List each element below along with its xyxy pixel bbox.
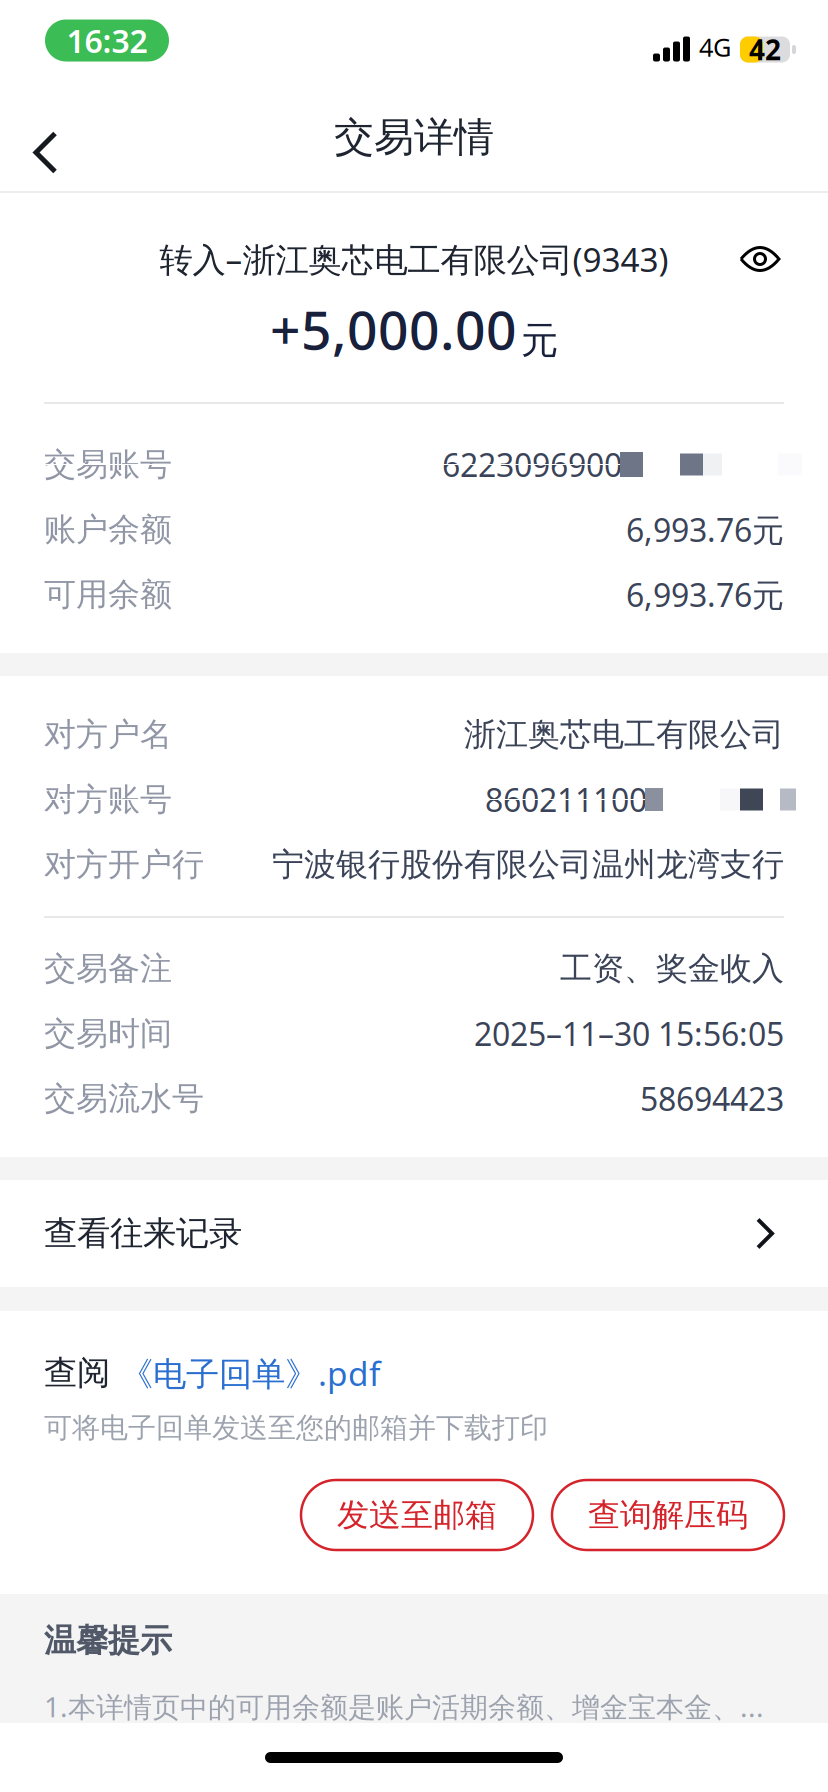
- staticText: 温馨提示: [44, 1621, 172, 1660]
- staticText: 1.本详情页中的可用余额是账户活期余额、增金宝本金、增金: [44, 1688, 776, 1725]
- staticText: 对方账号: [44, 780, 172, 819]
- staticText: 交易时间: [44, 1014, 172, 1053]
- staticText: 宁波银行股份有限公司温州龙湾支行: [272, 845, 784, 884]
- staticText: 交易详情: [334, 113, 494, 162]
- staticText: 可用余额: [44, 575, 172, 614]
- staticText: 转入–浙江奥芯电工有限公司(9343): [159, 237, 668, 281]
- button[interactable]: 显示或隐藏金额: [729, 226, 791, 292]
- button[interactable]: 《电子回单》.pdf: [120, 1351, 380, 1395]
- staticText: 58694423: [640, 1077, 784, 1120]
- staticText: 6,993.76元: [626, 573, 784, 616]
- button[interactable]: 查看往来记录: [0, 1180, 828, 1287]
- staticText: 元: [521, 318, 558, 363]
- staticText: 6,993.76元: [626, 508, 784, 551]
- staticText: 《电子回单》.pdf: [120, 1351, 380, 1395]
- staticText: 6223096900: [442, 443, 622, 486]
- staticText: 交易账号: [44, 445, 172, 484]
- button[interactable]: 查询解压码: [552, 1480, 784, 1550]
- staticText: 交易流水号: [44, 1079, 204, 1118]
- staticText: 2025–11–30 15:56:05: [474, 1012, 784, 1055]
- staticText: 工资、奖金收入: [560, 949, 784, 988]
- staticText: 账户余额: [44, 510, 172, 549]
- button[interactable]: 返回: [0, 84, 104, 191]
- staticText: 查阅: [44, 1352, 120, 1393]
- staticText: 对方户名: [44, 715, 172, 754]
- staticText: 860211100: [485, 778, 647, 821]
- staticText: 16:32: [66, 19, 147, 62]
- staticText: +5,000.00: [270, 294, 517, 364]
- staticText: 查询解压码: [588, 1495, 748, 1535]
- staticText: 4G: [699, 30, 731, 64]
- staticText: 42: [749, 31, 781, 68]
- staticText: 发送至邮箱: [337, 1495, 497, 1535]
- staticText: 交易备注: [44, 949, 172, 988]
- button[interactable]: 发送至邮箱: [301, 1480, 533, 1550]
- staticText: 可将电子回单发送至您的邮箱并下载打印: [44, 1411, 548, 1445]
- staticText: 对方开户行: [44, 845, 204, 884]
- staticText: 浙江奥芯电工有限公司: [464, 715, 784, 754]
- staticText: 查看往来记录: [44, 1213, 242, 1254]
